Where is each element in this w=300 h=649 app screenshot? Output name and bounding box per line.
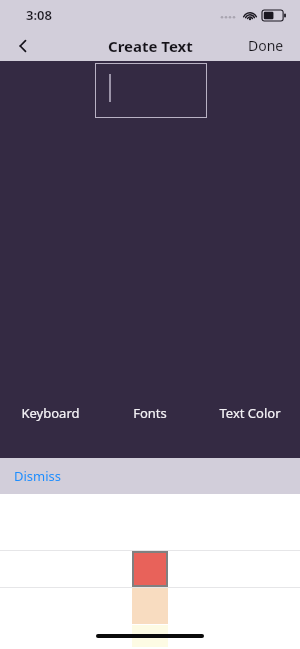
button[interactable] (95, 63, 207, 118)
button[interactable]: Cream color (132, 625, 168, 647)
staticText: Text Color (219, 404, 281, 422)
button[interactable]: Done (232, 30, 300, 61)
button[interactable]: Back (0, 30, 46, 61)
staticText: Create Text (108, 36, 193, 56)
staticText: Done (248, 36, 284, 55)
staticText: Keyboard (21, 404, 80, 422)
staticText: Dismiss (14, 467, 62, 485)
button[interactable]: Fonts (100, 399, 200, 427)
staticText: 3:08 (26, 6, 52, 24)
button[interactable]: Text Color (200, 399, 300, 427)
button[interactable]: Dismiss (0, 458, 300, 494)
staticText: Fonts (133, 404, 167, 422)
button[interactable]: Keyboard (0, 399, 100, 427)
